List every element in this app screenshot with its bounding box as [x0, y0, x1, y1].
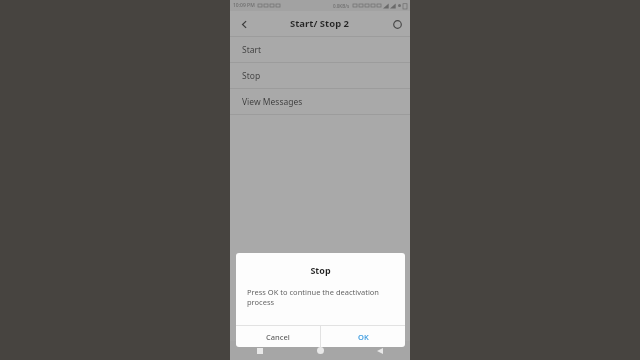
staticText: Start/ Stop 2	[290, 17, 350, 30]
button[interactable]: Navigate up	[234, 14, 254, 34]
staticText: 10:09 PM	[233, 2, 255, 9]
button[interactable]: OK	[321, 326, 405, 347]
button[interactable]: Cancel	[236, 326, 320, 347]
button[interactable]: Stop	[230, 63, 410, 88]
button[interactable]: Recent apps	[230, 341, 290, 360]
button[interactable]: Refresh	[388, 15, 406, 33]
staticText: Start	[242, 44, 262, 56]
button[interactable]: View Messages	[230, 89, 410, 114]
staticText: OK	[358, 332, 369, 342]
button[interactable]: Home	[290, 341, 350, 360]
staticText: Cancel	[266, 332, 290, 342]
staticText: View Messages	[242, 96, 303, 108]
staticText: Press OK to continue the deactivation pr…	[247, 287, 392, 307]
staticText: Stop	[236, 264, 405, 276]
staticText: 0.0KB/s	[333, 3, 350, 9]
staticText: Stop	[242, 70, 261, 82]
button[interactable]: Back	[350, 341, 410, 360]
button[interactable]: Start	[230, 37, 410, 62]
